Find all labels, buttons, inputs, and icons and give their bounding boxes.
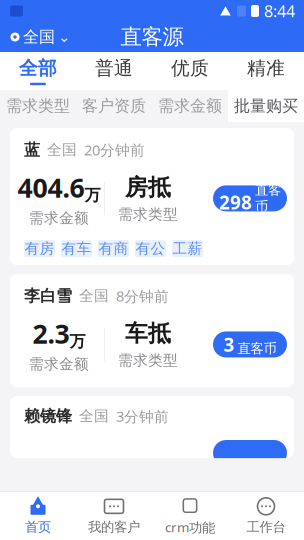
staticText: 精准 [247,57,285,80]
button[interactable]: 需求金额 [152,90,228,122]
staticText: 全国 [47,141,77,159]
staticText: 3分钟前 [116,406,169,426]
staticText: 需求金额 [29,355,89,373]
button[interactable]: 优质 [152,52,228,90]
button[interactable]: 普通 [76,52,152,90]
staticText: 2.3 [32,316,69,351]
staticText: 蓝 [24,140,40,160]
staticText: 我的客户 [88,519,140,535]
button[interactable]: 批量购买 [228,90,304,122]
staticText: crm功能 [165,518,215,536]
button[interactable]: 需求类型 [0,90,76,122]
staticText: 直客源 [120,24,183,50]
button[interactable]: 全国 [0,22,80,52]
staticText: 20分钟前 [84,140,145,160]
staticText: 万 [69,331,85,351]
staticText: 有房 [24,240,54,258]
button[interactable]: 工作台 [228,492,304,540]
staticText: 有商 [98,240,128,258]
button[interactable]: 客户资质 [76,90,152,122]
staticText: 直客币 [237,340,276,357]
button[interactable]: 赖镜锋 [10,396,294,458]
staticText: 客户资质 [82,96,146,116]
button[interactable]: 全部 [0,52,76,90]
button[interactable]: 3 [213,331,287,357]
button[interactable]: 298 [213,185,287,211]
staticText: 全部 [19,57,57,80]
staticText: 工薪 [172,240,202,258]
staticText: 需求类型 [6,96,70,116]
button[interactable]: crm功能 [152,492,228,540]
staticText: 8分钟前 [116,286,169,306]
staticText: 需求类型 [118,351,178,369]
staticText: 全国 [79,407,109,425]
staticText: 车抵 [125,319,171,347]
staticText: 404.6 [17,170,84,205]
staticText: 有公 [135,240,165,258]
button[interactable]: 我的客户 [76,492,152,540]
staticText: 工作台 [246,519,285,535]
staticText: 全国 [79,287,109,305]
staticText: 赖镜锋 [24,406,72,426]
staticText: 全国 [23,27,55,47]
staticText: 298 [219,190,252,215]
button[interactable]: 蓝 [10,128,294,265]
staticText: 8:44 [264,0,295,22]
staticText: 优质 [171,57,209,80]
staticText: 万 [84,185,100,205]
staticText: 李白雪 [24,286,72,306]
staticText: 需求类型 [118,205,178,223]
staticText: 普通 [95,57,133,80]
staticText: 有车 [61,240,91,258]
staticText: 3 [223,332,234,357]
button[interactable]: 李白雪 [10,274,294,387]
button[interactable]: 精准 [228,52,304,90]
staticText: 需求金额 [29,209,89,227]
staticText: ⌄ [58,29,70,45]
button[interactable]: 首页 [0,492,76,540]
staticText: 直客币 [255,182,281,215]
staticText: 房抵 [125,173,171,201]
staticText: 需求金额 [158,96,222,116]
staticText: 首页 [25,519,51,535]
staticText: 批量购买 [234,96,298,116]
